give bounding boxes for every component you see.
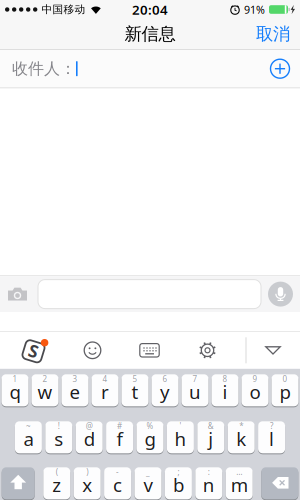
staticText: S [28,339,38,362]
staticText: 4 [102,374,107,384]
staticText: 8 [222,374,227,384]
staticText: ; [177,467,179,477]
staticText: b [173,472,184,497]
button[interactable]: 4 [91,374,118,407]
button[interactable]: 收起键盘 [246,332,299,368]
staticText: x [82,472,92,497]
button[interactable]: @ [76,421,103,454]
button[interactable]: 表情 [64,332,120,368]
staticText: c [113,472,122,497]
button[interactable]: 相机 [0,286,27,302]
staticText: w [37,379,52,404]
staticText: n [203,472,215,497]
button[interactable]: ! [45,421,72,454]
button[interactable]: 0 [271,374,298,407]
button[interactable]: & [197,421,224,454]
staticText: 20:04 [132,1,168,18]
staticText: : [208,467,210,477]
button[interactable]: # [106,421,133,454]
staticText: * [239,421,243,431]
staticText: k [236,426,246,451]
staticText: g [144,426,155,451]
staticText: j [208,426,213,451]
staticText: 收件人： [12,59,76,79]
button[interactable]: 9 [241,374,268,407]
staticText: o [249,379,260,404]
staticText: @ [86,421,93,431]
staticText: m [231,472,248,497]
button[interactable]: ? [258,421,285,454]
staticText: # [117,421,122,431]
staticText: 中国移动 [41,3,85,16]
staticText: % [146,421,153,431]
staticText: l [269,426,274,451]
button[interactable]: 键盘切换 [120,332,178,368]
staticText: f [117,426,123,451]
button[interactable]: 收件人 [0,50,264,88]
staticText: 2 [42,374,47,384]
button[interactable]: 删除 [261,467,298,500]
staticText: v [143,472,152,497]
staticText: … [236,467,242,477]
button[interactable]: - [104,467,131,500]
staticText: z [52,472,61,497]
button[interactable]: ~ [15,421,42,454]
staticText: _ [146,467,150,477]
staticText: t [131,379,138,404]
button[interactable]: 8 [211,374,238,407]
staticText: y [160,379,170,404]
button[interactable]: ( [43,467,70,500]
staticText: - [116,467,119,477]
staticText: 0 [282,374,287,384]
button[interactable]: Shift [2,467,35,500]
staticText: i [222,379,227,404]
button[interactable]: 5 [121,374,148,407]
staticText: h [174,426,186,451]
staticText: ! [58,421,60,431]
button[interactable]: 取消 [256,23,300,45]
button[interactable]: ; [165,467,192,500]
staticText: ~ [26,421,31,431]
button[interactable]: 7 [181,374,208,407]
button[interactable]: ) [74,467,101,500]
staticText: q [9,379,20,404]
staticText: 5 [132,374,137,384]
staticText: 新信息 [124,23,175,45]
staticText: 91% [244,2,265,17]
staticText: ) [86,467,88,477]
button[interactable]: 2 [31,374,58,407]
staticText: ' [179,421,181,431]
button[interactable]: _ [134,467,161,500]
staticText: d [84,426,95,451]
staticText: 6 [162,374,167,384]
button[interactable]: : [195,467,222,500]
button[interactable]: 1 [1,374,28,407]
staticText: ( [56,467,58,477]
button[interactable]: * [228,421,255,454]
staticText: a [23,426,33,451]
staticText: 3 [72,374,77,384]
button[interactable]: % [136,421,163,454]
staticText: & [208,421,214,431]
button[interactable]: 搜狗输入法 [5,332,64,368]
staticText: r [101,379,109,404]
staticText: 1 [12,374,17,384]
staticText: 7 [192,374,197,384]
button[interactable]: 设置 [178,332,236,368]
button[interactable]: 短信 [27,280,268,309]
button[interactable]: ' [167,421,194,454]
staticText: 9 [252,374,257,384]
button[interactable]: 添加联系人 [264,50,300,88]
staticText: ? [270,421,273,431]
staticText: e [69,379,80,404]
staticText: 取消 [256,23,290,45]
staticText: u [189,379,201,404]
button[interactable]: 6 [151,374,178,407]
staticText: s [54,426,63,451]
staticText: p [279,379,290,404]
button[interactable]: 3 [61,374,88,407]
button[interactable]: … [226,467,253,500]
button[interactable]: 语音 [268,282,300,307]
